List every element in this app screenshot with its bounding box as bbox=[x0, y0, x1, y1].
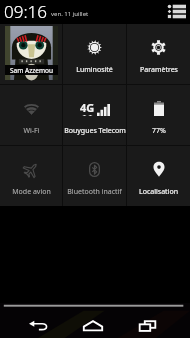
staticText: Luminosité bbox=[76, 65, 113, 75]
staticText: Localisation bbox=[139, 187, 178, 197]
button[interactable]: Notifications bbox=[167, 4, 186, 19]
button[interactable]: Paramètres bbox=[127, 24, 190, 84]
staticText: ven. 11 juillet bbox=[51, 10, 89, 18]
staticText: 77% bbox=[152, 126, 166, 136]
staticText: Bluetooth inactif bbox=[67, 187, 122, 197]
staticText: Sam Azzemou bbox=[10, 66, 53, 75]
button[interactable]: 4G bbox=[63, 85, 126, 145]
button[interactable]: Wi-Fi bbox=[0, 85, 62, 145]
staticText: 4G bbox=[80, 100, 95, 115]
button[interactable]: Recent apps bbox=[120, 313, 174, 338]
staticText: Wi-Fi bbox=[23, 126, 40, 136]
button[interactable]: Mode avion bbox=[0, 146, 62, 206]
staticText: 09:16 bbox=[4, 0, 47, 20]
button[interactable]: Back bbox=[11, 313, 66, 338]
button[interactable]: Bluetooth inactif bbox=[63, 146, 126, 206]
button[interactable]: Home bbox=[66, 313, 120, 338]
staticText: Bouygues Telecom bbox=[64, 126, 126, 136]
button[interactable]: 77% bbox=[127, 85, 190, 145]
button[interactable]: Sam Azzemou bbox=[0, 24, 62, 84]
button[interactable]: Luminosité bbox=[63, 24, 126, 84]
staticText: Mode avion bbox=[12, 187, 51, 197]
staticText: Paramètres bbox=[140, 65, 178, 75]
button[interactable]: Localisation bbox=[127, 146, 190, 206]
